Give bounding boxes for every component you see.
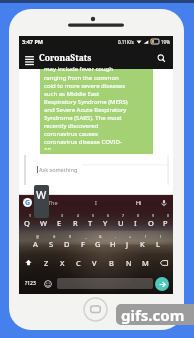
staticText: 0.11K/s bbox=[118, 39, 134, 45]
button[interactable]: Menu bbox=[24, 53, 35, 64]
button[interactable]: # bbox=[43, 231, 59, 252]
button[interactable]: Emoji bbox=[41, 273, 55, 294]
button[interactable]: Hi bbox=[117, 195, 160, 210]
staticText: # bbox=[53, 234, 56, 239]
staticText: P bbox=[163, 218, 168, 228]
staticText: Q bbox=[24, 218, 30, 228]
staticText: Z bbox=[44, 258, 49, 268]
button[interactable]: Z bbox=[38, 252, 54, 273]
button[interactable]: 0 bbox=[158, 210, 173, 231]
staticText: Y bbox=[103, 218, 108, 228]
staticText: M bbox=[142, 258, 149, 268]
button[interactable]: 3 bbox=[51, 210, 67, 231]
button[interactable]: C bbox=[70, 252, 86, 273]
button[interactable]: X bbox=[54, 252, 70, 273]
staticText: H bbox=[110, 239, 116, 249]
button[interactable]: Space bbox=[57, 278, 153, 289]
button[interactable]: - bbox=[105, 231, 120, 252]
staticText: 3:47 PM bbox=[22, 38, 44, 45]
staticText: - bbox=[115, 234, 117, 239]
button[interactable]: 9 bbox=[143, 210, 158, 231]
staticText: A bbox=[33, 239, 38, 249]
button[interactable]: 8 bbox=[128, 210, 143, 231]
button[interactable]: 1 bbox=[19, 210, 35, 231]
staticText: 3 bbox=[61, 213, 64, 218]
button[interactable]: ) bbox=[150, 231, 165, 252]
button[interactable]: 2 bbox=[35, 210, 51, 231]
button[interactable]: N bbox=[120, 252, 137, 273]
staticText: R bbox=[73, 218, 78, 228]
button[interactable]: Google bbox=[23, 198, 32, 207]
button[interactable]: Voice input bbox=[160, 199, 168, 207]
staticText: 19% bbox=[161, 39, 170, 45]
button[interactable]: $ bbox=[59, 231, 75, 252]
button[interactable]: The bbox=[32, 195, 74, 210]
button[interactable]: Backspace bbox=[154, 252, 173, 273]
staticText: ?123 bbox=[25, 280, 36, 287]
button[interactable]: I bbox=[74, 195, 117, 210]
button[interactable]: Search bbox=[157, 54, 166, 63]
staticText: 7 bbox=[122, 213, 125, 218]
staticText: D bbox=[64, 239, 70, 249]
staticText: + bbox=[129, 234, 132, 239]
staticText: W bbox=[40, 218, 47, 228]
staticText: N bbox=[126, 258, 132, 268]
staticText: _ bbox=[85, 234, 87, 239]
button[interactable]: Home bbox=[83, 297, 108, 322]
staticText: W bbox=[36, 187, 47, 202]
staticText: X bbox=[60, 258, 65, 268]
staticText: I bbox=[134, 218, 137, 228]
button[interactable]: 7 bbox=[113, 210, 128, 231]
staticText: V bbox=[92, 258, 97, 268]
staticText: @ bbox=[36, 234, 40, 239]
staticText: G bbox=[95, 239, 101, 249]
button[interactable]: @ bbox=[27, 231, 43, 252]
staticText: $ bbox=[69, 234, 72, 239]
staticText: C bbox=[76, 258, 81, 268]
staticText: The bbox=[48, 199, 58, 206]
staticText: Hi bbox=[136, 199, 142, 206]
staticText: L bbox=[156, 239, 160, 249]
staticText: S bbox=[49, 239, 54, 249]
button[interactable]: ( bbox=[135, 231, 150, 252]
staticText: & bbox=[99, 234, 102, 239]
staticText: 4 bbox=[77, 213, 80, 218]
button[interactable]: V bbox=[86, 252, 103, 273]
button[interactable]: 4 bbox=[67, 210, 83, 231]
staticText: may include fever cough ranging from the… bbox=[44, 65, 128, 150]
staticText: K bbox=[140, 239, 145, 249]
staticText: 6 bbox=[107, 213, 110, 218]
staticText: F bbox=[81, 239, 85, 249]
staticText: CoronaStats bbox=[39, 52, 92, 64]
staticText: 5 bbox=[92, 213, 95, 218]
button[interactable]: ?123 bbox=[19, 273, 41, 294]
button[interactable]: Shift bbox=[19, 252, 38, 273]
staticText: T bbox=[88, 218, 93, 228]
staticText: 1 bbox=[29, 213, 32, 218]
staticText: U bbox=[118, 218, 124, 228]
button[interactable]: _ bbox=[75, 231, 90, 252]
button[interactable]: 6 bbox=[98, 210, 113, 231]
staticText: J bbox=[126, 239, 129, 249]
staticText: gifs.com bbox=[121, 305, 185, 325]
staticText: I bbox=[95, 199, 97, 206]
staticText: 9 bbox=[152, 213, 155, 218]
button[interactable]: Send bbox=[155, 277, 169, 291]
staticText: Ask something bbox=[39, 166, 78, 173]
button[interactable]: B bbox=[103, 252, 120, 273]
staticText: E bbox=[57, 218, 62, 228]
button[interactable]: 5 bbox=[83, 210, 98, 231]
staticText: 8 bbox=[137, 213, 140, 218]
button[interactable]: + bbox=[120, 231, 135, 252]
staticText: O bbox=[148, 218, 154, 228]
staticText: B bbox=[109, 258, 114, 268]
button[interactable]: M bbox=[137, 252, 154, 273]
staticText: 0 bbox=[167, 213, 170, 218]
staticText: G bbox=[25, 198, 31, 207]
button[interactable]: Ask something bbox=[25, 155, 168, 185]
staticText: ( bbox=[145, 234, 147, 239]
staticText: ) bbox=[160, 234, 162, 239]
button[interactable]: & bbox=[90, 231, 105, 252]
